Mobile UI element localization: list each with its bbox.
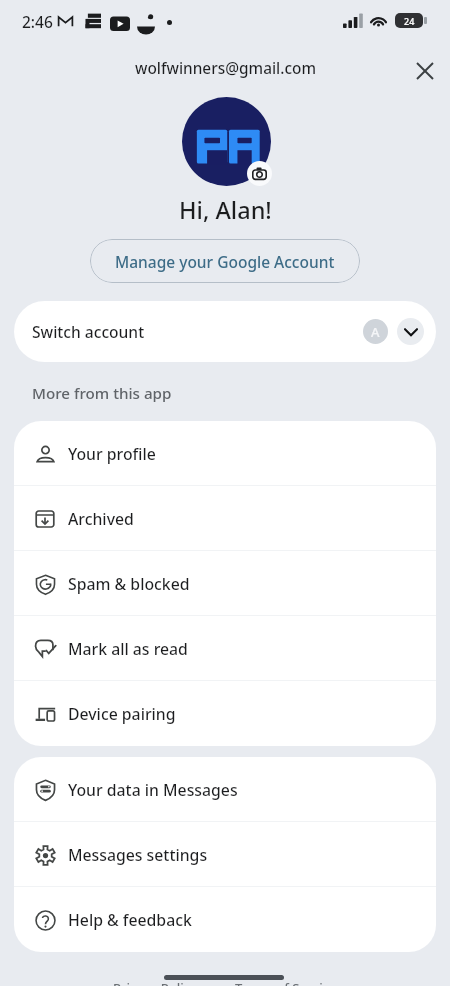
staticText: Help & feedback — [68, 909, 192, 931]
button[interactable]: Terms of Service — [235, 979, 337, 986]
staticText: wolfwinners@gmail.com — [135, 58, 316, 79]
staticText: Spam & blocked — [68, 573, 190, 595]
button[interactable]: Device pairing — [14, 681, 436, 746]
button[interactable]: Close — [406, 52, 444, 90]
button[interactable]: Archived — [14, 486, 436, 551]
staticText: Manage your Google Account — [115, 251, 335, 272]
staticText: 24 — [404, 15, 415, 27]
staticText: Messages settings — [68, 844, 208, 866]
staticText: A — [371, 323, 380, 341]
staticText: Your profile — [68, 443, 156, 465]
button[interactable]: Help & feedback — [14, 887, 436, 952]
button[interactable]: Change profile photo — [247, 161, 272, 186]
button[interactable]: Privacy Policy — [113, 979, 197, 986]
button[interactable]: Messages settings — [14, 822, 436, 887]
staticText: Archived — [68, 508, 134, 530]
staticText: More from this app — [32, 383, 172, 404]
button[interactable]: Your data in Messages — [14, 757, 436, 822]
button[interactable]: Manage your Google Account — [90, 239, 360, 283]
button[interactable]: Spam & blocked — [14, 551, 436, 616]
staticText: Device pairing — [68, 703, 176, 725]
button[interactable]: Switch account — [14, 301, 436, 362]
staticText: Your data in Messages — [68, 779, 238, 801]
button[interactable]: Your profile — [14, 421, 436, 486]
staticText: Mark all as read — [68, 638, 188, 660]
staticText: Switch account — [32, 321, 145, 342]
button[interactable]: Mark all as read — [14, 616, 436, 681]
staticText: Hi, Alan! — [179, 194, 272, 226]
staticText: 2:46 — [22, 11, 53, 32]
button[interactable]: Profile photo — [182, 97, 271, 186]
